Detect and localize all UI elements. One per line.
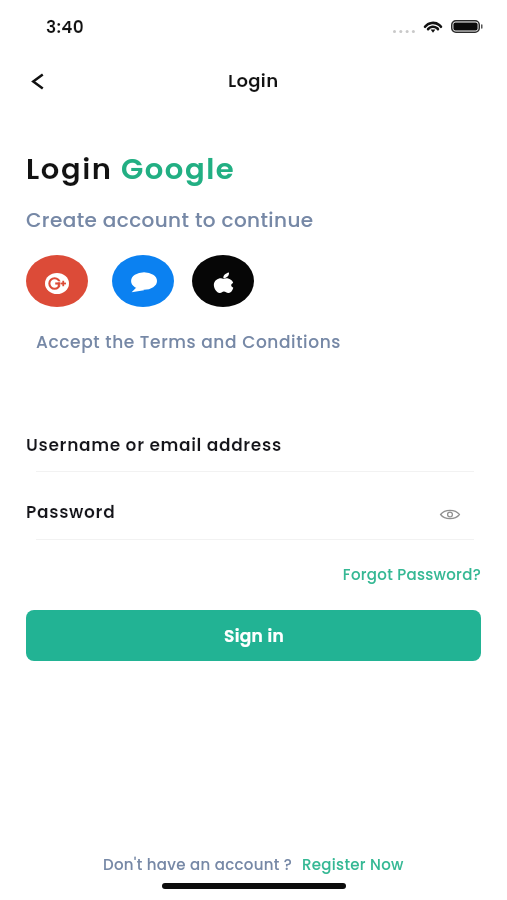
staticText: Login xyxy=(26,149,121,190)
staticText: Username or email address xyxy=(26,433,282,457)
button[interactable]: Show password xyxy=(434,500,466,528)
button[interactable]: Back xyxy=(15,59,60,104)
staticText: Sign in xyxy=(224,624,284,648)
staticText: Create account to continue xyxy=(26,206,314,234)
staticText: Login xyxy=(228,68,279,93)
staticText: Don't have an account ? xyxy=(103,854,293,875)
button[interactable]: Sign in xyxy=(26,610,481,661)
button[interactable]: Sign in with Apple xyxy=(192,255,254,307)
button[interactable]: Sign in with Google Plus xyxy=(26,255,88,307)
button[interactable]: Forgot Password? xyxy=(0,564,481,585)
staticText: Password xyxy=(26,500,116,524)
staticText: Google xyxy=(121,149,236,190)
button[interactable]: Sign in with Messenger xyxy=(112,255,174,307)
staticText: 3:40 xyxy=(46,15,85,39)
button[interactable]: Register Now xyxy=(302,854,404,875)
button[interactable]: Accept the Terms and Conditions xyxy=(36,330,341,354)
